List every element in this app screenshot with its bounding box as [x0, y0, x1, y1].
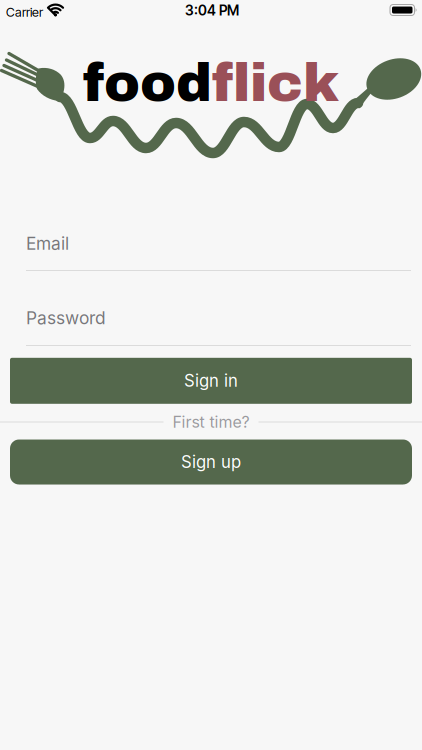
button[interactable]: Sign up: [10, 439, 412, 484]
staticText: Sign up: [181, 452, 241, 472]
staticText: First time?: [172, 412, 249, 432]
staticText: Password: [26, 307, 106, 328]
staticText: food: [83, 54, 212, 112]
button[interactable]: Sign in: [10, 358, 412, 404]
staticText: 3:04 PM: [185, 2, 239, 19]
staticText: Sign in: [184, 371, 238, 391]
staticText: Carrier: [6, 4, 43, 20]
staticText: Email: [26, 233, 69, 254]
staticText: flick: [212, 54, 339, 112]
